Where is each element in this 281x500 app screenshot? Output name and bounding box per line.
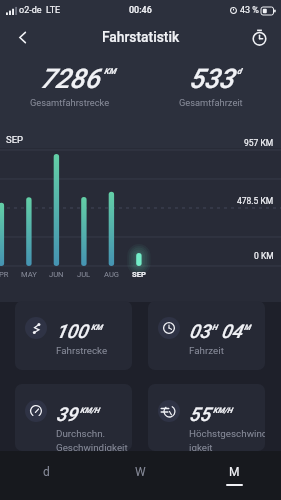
staticText: APR	[0, 270, 9, 279]
button[interactable]: Back	[7, 22, 37, 52]
staticText: 7286	[40, 63, 100, 95]
staticText: Gesamtfahrzeit	[179, 97, 243, 108]
staticText: H	[212, 323, 218, 332]
button[interactable]: d	[0, 451, 93, 500]
staticText: SEP	[132, 270, 146, 279]
staticText: 43 %	[240, 5, 259, 16]
staticText: 957 KM	[244, 138, 274, 148]
staticText: d	[43, 465, 50, 479]
button[interactable]: W	[93, 451, 187, 500]
staticText: KM	[104, 67, 116, 76]
staticText: 0 KM	[254, 251, 274, 261]
staticText: 533	[189, 63, 234, 95]
staticText: o2-de	[19, 5, 42, 16]
staticText: Durchschn. Geschwindigkeit	[56, 428, 128, 451]
staticText: AUG	[104, 270, 119, 279]
staticText: SEP	[6, 134, 24, 145]
staticText: JUL	[77, 270, 91, 279]
staticText: JUN	[49, 270, 64, 279]
staticText: KM/H	[80, 406, 100, 415]
staticText: Fahrzeit	[189, 345, 224, 356]
button[interactable]: Stopwatch	[244, 22, 274, 52]
staticText: LTE	[46, 5, 61, 16]
staticText: 55	[189, 403, 210, 425]
button[interactable]: 03	[148, 301, 265, 370]
button[interactable]: 100	[15, 301, 132, 370]
staticText: 39	[56, 403, 77, 425]
staticText: MAY	[21, 270, 37, 279]
button[interactable]: M	[187, 451, 281, 500]
staticText: KM/H	[213, 406, 233, 415]
staticText: Fahrstrecke	[56, 345, 108, 356]
staticText: W	[135, 465, 146, 479]
staticText: 100	[56, 320, 88, 342]
staticText: Fahrstatistik	[102, 29, 180, 45]
staticText: KM	[91, 323, 103, 332]
staticText: 04	[221, 320, 242, 342]
staticText: Höchstgeschwind igkeit	[189, 428, 265, 451]
staticText: M	[244, 323, 251, 332]
staticText: 00:46	[129, 5, 152, 16]
button[interactable]: 39	[15, 384, 132, 451]
staticText: d	[237, 67, 242, 76]
button[interactable]: 55	[148, 384, 265, 451]
staticText: M	[229, 465, 240, 479]
staticText: Gesamtfahrstrecke	[30, 97, 110, 108]
staticText: 478.5 KM	[237, 196, 274, 206]
staticText: 03	[189, 320, 210, 342]
